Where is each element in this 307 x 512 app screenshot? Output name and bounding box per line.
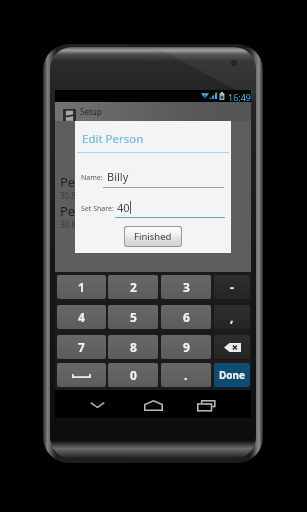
button[interactable]: 5 <box>108 305 158 329</box>
staticText: 8 <box>130 339 137 355</box>
staticText: Name: <box>81 173 103 183</box>
staticText: 30.8 <box>60 190 76 201</box>
staticText: Billy <box>107 169 129 184</box>
staticText: 6 <box>183 309 190 325</box>
staticText: 9 <box>183 339 190 355</box>
button[interactable]: - <box>214 275 250 299</box>
staticText: Finished <box>134 230 172 243</box>
button[interactable]: 1 <box>57 275 106 299</box>
button[interactable]: Home <box>133 394 173 416</box>
staticText: - <box>230 279 234 295</box>
staticText: Setup <box>80 106 102 117</box>
button[interactable]: Back <box>77 394 117 416</box>
button[interactable]: 2 <box>108 275 158 299</box>
staticText: Done <box>219 368 246 382</box>
staticText: 30.8 <box>60 219 76 230</box>
staticText: . <box>184 367 188 383</box>
button[interactable]: 9 <box>161 335 211 359</box>
staticText: Edit Person <box>82 131 144 147</box>
staticText: 1 <box>78 279 85 295</box>
staticText: 3 <box>183 279 190 295</box>
staticText: 7 <box>78 339 85 355</box>
button[interactable]: Backspace <box>214 335 250 359</box>
button[interactable]: . <box>161 363 211 387</box>
staticText: Pe <box>60 202 76 220</box>
button[interactable]: 7 <box>57 335 106 359</box>
button[interactable]: Done <box>214 363 250 387</box>
staticText: , <box>230 309 234 325</box>
staticText: 4 <box>78 309 85 325</box>
staticText: 16:49 <box>228 91 252 103</box>
staticText: Pe <box>60 173 76 191</box>
staticText: 40 <box>117 200 130 215</box>
staticText: Set Share: <box>81 204 114 214</box>
button[interactable]: Finished <box>125 227 181 246</box>
button[interactable]: Space <box>57 363 106 387</box>
other: Backspace <box>224 343 241 352</box>
staticText: 0 <box>130 367 137 383</box>
staticText: 2 <box>130 279 137 295</box>
button[interactable]: 6 <box>161 305 211 329</box>
staticText: 5 <box>130 309 137 325</box>
button[interactable]: Recents <box>186 394 226 416</box>
button[interactable]: 0 <box>108 363 158 387</box>
other: Space <box>72 372 91 378</box>
button[interactable]: 3 <box>161 275 211 299</box>
button[interactable]: 4 <box>57 305 106 329</box>
button[interactable]: , <box>214 305 250 329</box>
button[interactable]: 8 <box>108 335 158 359</box>
